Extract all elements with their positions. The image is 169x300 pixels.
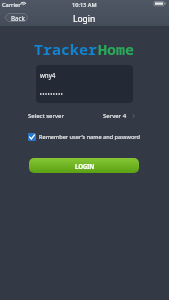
staticText: Home	[98, 39, 135, 59]
button[interactable]: LOGIN	[29, 158, 139, 173]
staticText: wny4	[40, 71, 56, 79]
button[interactable]: wny4	[36, 65, 133, 84]
button[interactable]: Remember user's name and password	[28, 130, 140, 143]
staticText: Back	[11, 14, 25, 22]
staticText: 10:13 AM	[72, 1, 97, 9]
staticText: Server 4	[103, 112, 127, 120]
staticText: Tracker	[34, 39, 98, 59]
staticText: LOGIN	[75, 162, 94, 170]
staticText: Select server	[28, 112, 64, 120]
staticText: Remember user's name and password	[39, 133, 140, 141]
button[interactable]: Back	[4, 13, 28, 22]
staticText: Carrier	[2, 1, 21, 9]
button[interactable]	[36, 84, 133, 103]
staticText: Login	[73, 13, 96, 25]
button[interactable]: Select server	[0, 108, 169, 124]
